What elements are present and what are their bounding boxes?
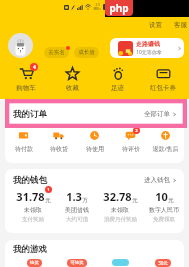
staticText: php: [109, 1, 129, 15]
button[interactable]: 10: [144, 189, 184, 223]
staticText: 可抽奖: [70, 260, 84, 266]
staticText: 我的游戏: [13, 244, 47, 255]
staticText: 去实名: [48, 49, 65, 56]
staticText: 32.78: [103, 189, 132, 204]
staticText: 抽奖: [30, 260, 39, 266]
button[interactable]: 客服: [174, 21, 187, 29]
staticText: 全部订单: [144, 110, 170, 118]
staticText: 走路赚钱: [136, 40, 160, 48]
staticText: 元: [132, 197, 138, 204]
staticText: 2.9: [95, 3, 100, 7]
staticText: 1.3: [66, 189, 82, 204]
button[interactable]: 32.78: [100, 189, 140, 223]
button[interactable]: 足迹: [98, 66, 136, 92]
button[interactable]: 设置: [149, 21, 162, 29]
staticText: 10: [155, 189, 168, 204]
button[interactable]: 待收货: [41, 130, 76, 153]
staticText: 31.78: [16, 189, 45, 204]
button[interactable]: 30元: [141, 259, 177, 267]
button[interactable]: [98, 259, 134, 267]
staticText: 我的钱包: [13, 175, 47, 186]
staticText: 支付奖励: [22, 216, 44, 223]
button[interactable]: 成长值: [74, 47, 99, 58]
button[interactable]: 走路赚钱: [110, 38, 184, 58]
staticText: 待收货: [50, 145, 68, 153]
staticText: 美团借钱: [65, 206, 89, 214]
staticText: 红包卡券: [150, 84, 176, 92]
button[interactable]: 可抽奖: [55, 259, 91, 267]
staticText: 4: [33, 64, 36, 71]
staticText: 客服: [174, 21, 187, 29]
button[interactable]: Profile avatar: [8, 33, 33, 58]
staticText: 未领取: [111, 206, 129, 214]
staticText: 我的订单: [13, 109, 47, 120]
staticText: 待评价: [122, 145, 140, 153]
staticText: 收藏: [66, 84, 79, 92]
staticText: 30元: [158, 260, 168, 266]
button[interactable]: 我的钱包: [13, 169, 177, 191]
button[interactable]: 我的订单: [13, 99, 177, 129]
button[interactable]: 31.78: [13, 189, 53, 223]
button[interactable]: 退款/售后: [148, 130, 183, 153]
staticText: 大约可借: [66, 216, 88, 223]
button[interactable]: 红包卡券: [144, 66, 182, 92]
button[interactable]: 2: [113, 130, 148, 153]
staticText: 成长值: [78, 49, 95, 56]
staticText: 未领取: [24, 206, 42, 214]
staticText: 10元等你拿: [136, 49, 162, 56]
button[interactable]: 待使用: [77, 130, 112, 153]
staticText: 元: [168, 197, 174, 204]
staticText: 购物车: [16, 84, 36, 92]
button[interactable]: 4: [7, 66, 45, 92]
staticText: 万: [82, 197, 88, 204]
staticText: MB/s: [93, 7, 101, 11]
button[interactable]: 我的游戏: [13, 240, 184, 258]
staticText: 待使用: [86, 145, 104, 153]
staticText: 退款/售后: [152, 145, 179, 153]
button[interactable]: 1.3: [57, 189, 97, 223]
staticText: 数字人民币: [149, 206, 179, 214]
staticText: 免费领取: [153, 216, 175, 223]
staticText: 2: [135, 128, 138, 134]
button[interactable]: 去实名: [44, 47, 69, 58]
button[interactable]: 收藏: [53, 66, 91, 92]
staticText: 设置: [149, 21, 162, 29]
button[interactable]: 抽奖: [12, 259, 48, 267]
staticText: 1: [47, 187, 50, 193]
staticText: 足迹: [111, 84, 124, 92]
staticText: 消费月付奖励: [104, 216, 137, 223]
staticText: 待付款: [15, 145, 33, 153]
button[interactable]: 待付款: [6, 130, 41, 153]
staticText: 元: [45, 197, 51, 204]
staticText: 进入钱包: [144, 176, 170, 184]
